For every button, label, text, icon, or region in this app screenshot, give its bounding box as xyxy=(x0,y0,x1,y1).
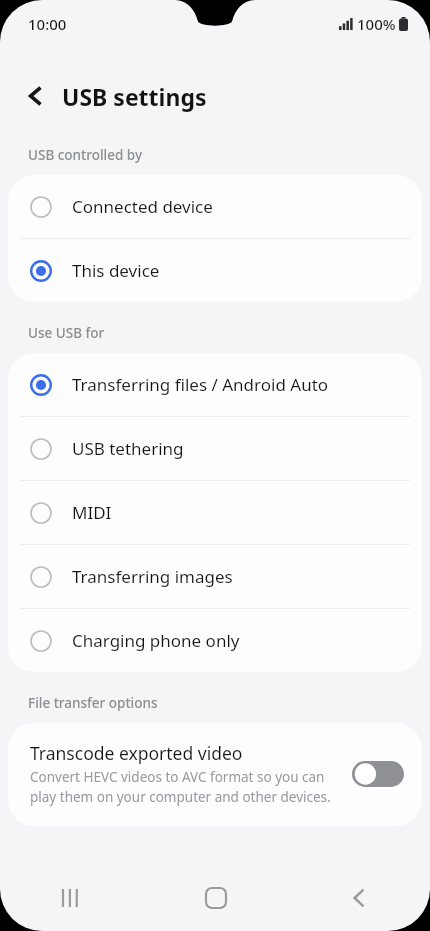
staticText: This device xyxy=(72,259,160,282)
staticText: Transferring files / Android Auto xyxy=(72,373,329,396)
staticText: USB settings xyxy=(62,81,207,112)
staticText: MIDI xyxy=(72,501,112,524)
staticText: USB tethering xyxy=(72,437,184,460)
button[interactable]: Recents xyxy=(0,865,144,931)
staticText: Connected device xyxy=(72,195,213,218)
button[interactable]: Transferring images xyxy=(8,545,422,608)
staticText: USB controlled by xyxy=(28,146,143,164)
staticText: Transcode exported video xyxy=(30,741,243,765)
button[interactable]: Transcode exported video toggle xyxy=(352,759,404,789)
staticText: 10:00 xyxy=(28,14,67,34)
staticText: Transferring images xyxy=(72,565,233,588)
button[interactable]: Transcode exported video xyxy=(8,723,422,826)
button[interactable]: Home xyxy=(144,865,287,931)
button[interactable]: Transferring files / Android Auto xyxy=(8,353,422,416)
staticText: Charging phone only xyxy=(72,629,240,652)
button[interactable]: Charging phone only xyxy=(8,609,422,672)
button[interactable]: MIDI xyxy=(8,481,422,544)
button[interactable]: This device xyxy=(8,239,422,302)
button[interactable]: USB tethering xyxy=(8,417,422,480)
staticText: Use USB for xyxy=(28,324,105,342)
button[interactable]: Connected device xyxy=(8,175,422,238)
button[interactable]: Back xyxy=(16,76,56,116)
button[interactable]: Back xyxy=(287,865,430,931)
staticText: File transfer options xyxy=(28,694,158,712)
staticText: Convert HEVC videos to AVC format so you… xyxy=(30,768,338,806)
staticText: 100% xyxy=(357,14,396,34)
